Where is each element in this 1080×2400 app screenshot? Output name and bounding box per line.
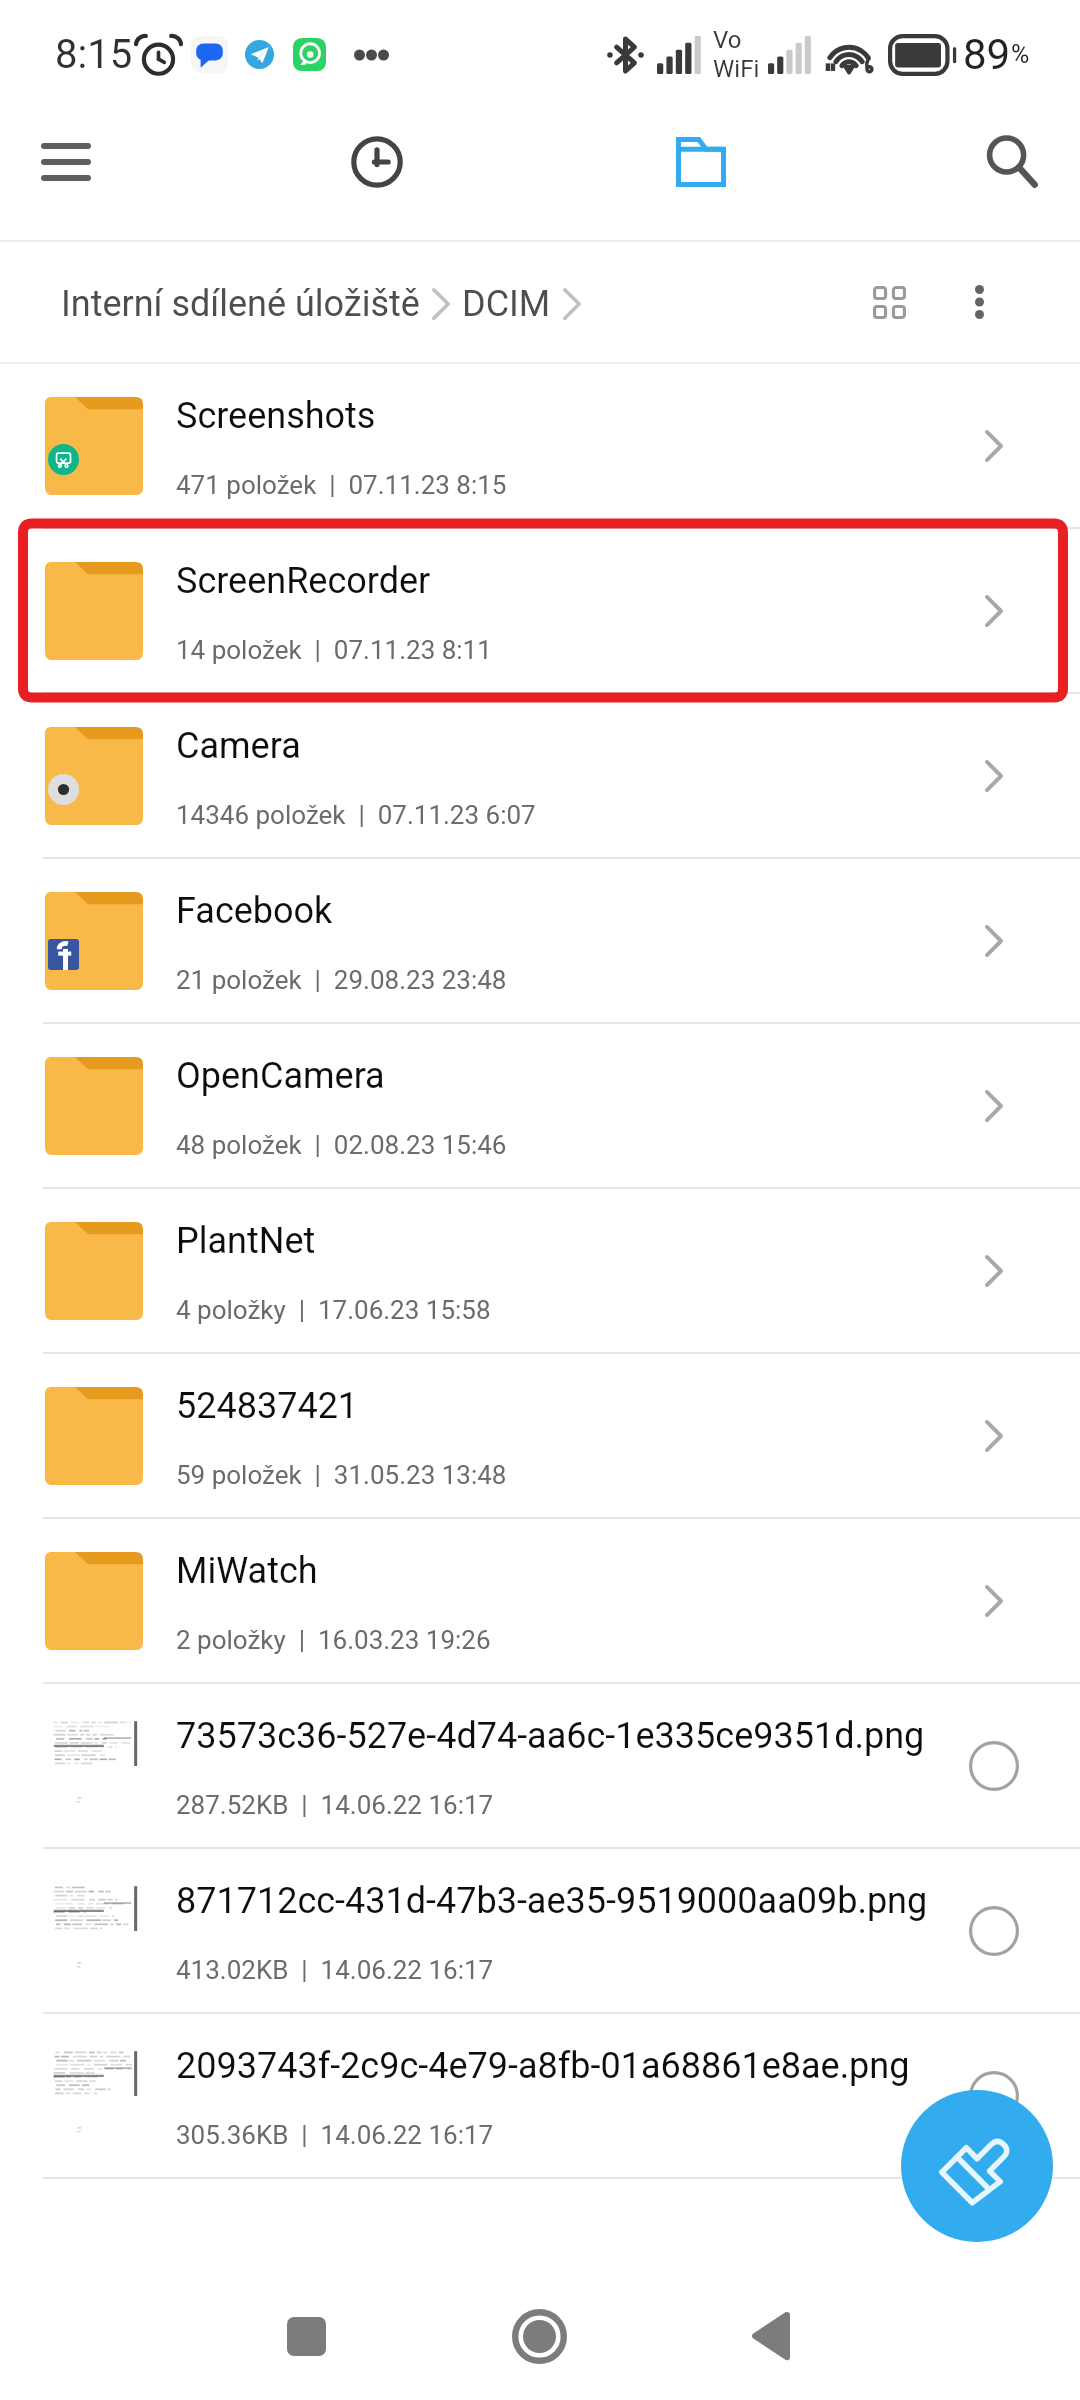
button[interactable]: Grid view: [843, 256, 935, 348]
button[interactable]: Browse files: [641, 102, 761, 222]
button[interactable]: Menu: [6, 102, 126, 222]
button[interactable]: 524837421: [0, 1354, 1080, 1517]
button[interactable]: Home: [484, 2281, 594, 2391]
staticText: 287.52KB | 14.06.22 16:17: [176, 1790, 494, 1820]
button[interactable]: MiWatch: [0, 1519, 1080, 1682]
staticText: 305.36KB | 14.06.22 16:17: [176, 2120, 494, 2150]
staticText: Interní sdílené úložiště: [61, 283, 420, 325]
button[interactable]: Clean up storage: [901, 2090, 1053, 2242]
button[interactable]: Recents: [251, 2281, 361, 2391]
staticText: OpenCamera: [176, 1055, 385, 1097]
staticText: %: [1011, 40, 1030, 69]
staticText: PlantNet: [176, 1220, 316, 1262]
button[interactable]: Search: [952, 102, 1072, 222]
button[interactable]: 73573c36-527e-4d74-aa6c-1e335ce9351d.png: [0, 1684, 1080, 1847]
staticText: 59 položek | 31.05.23 13:48: [176, 1460, 507, 1490]
staticText: 21 položek | 29.08.23 23:48: [176, 965, 507, 995]
staticText: 14346 položek | 07.11.23 6:07: [176, 800, 536, 830]
button[interactable]: More options: [933, 256, 1025, 348]
button[interactable]: Back: [716, 2281, 826, 2391]
button[interactable]: 2093743f-2c9c-4e79-a8fb-01a68861e8ae.png: [0, 2014, 1080, 2177]
button[interactable]: Interní sdílené úložiště: [61, 283, 420, 325]
staticText: 8:15: [55, 31, 133, 78]
staticText: 2 položky | 16.03.23 19:26: [176, 1625, 491, 1655]
button[interactable]: Recent files: [317, 102, 437, 222]
staticText: Camera: [176, 725, 301, 767]
staticText: Facebook: [176, 890, 333, 932]
staticText: DCIM: [462, 283, 551, 325]
staticText: 471 položek | 07.11.23 8:15: [176, 470, 507, 500]
staticText: 4 položky | 17.06.23 15:58: [176, 1295, 491, 1325]
button[interactable]: PlantNet: [0, 1189, 1080, 1352]
staticText: 89: [963, 30, 1011, 79]
staticText: MiWatch: [176, 1550, 318, 1592]
button[interactable]: Facebook: [0, 859, 1080, 1022]
staticText: 524837421: [176, 1385, 359, 1427]
staticText: Vo: [713, 26, 742, 54]
button[interactable]: DCIM: [462, 283, 551, 325]
button[interactable]: ScreenRecorder: [0, 529, 1080, 692]
button[interactable]: Camera: [0, 694, 1080, 857]
staticText: 413.02KB | 14.06.22 16:17: [176, 1955, 494, 1985]
staticText: WiFi: [713, 55, 760, 83]
staticText: 2093743f-2c9c-4e79-a8fb-01a68861e8ae.png: [176, 2045, 910, 2087]
button[interactable]: OpenCamera: [0, 1024, 1080, 1187]
staticText: 73573c36-527e-4d74-aa6c-1e335ce9351d.png: [176, 1715, 925, 1757]
button[interactable]: Screenshots: [0, 364, 1080, 527]
staticText: 48 položek | 02.08.23 15:46: [176, 1130, 507, 1160]
button[interactable]: 871712cc-431d-47b3-ae35-9519000aa09b.png: [0, 1849, 1080, 2012]
staticText: 871712cc-431d-47b3-ae35-9519000aa09b.png: [176, 1880, 928, 1922]
staticText: ScreenRecorder: [176, 560, 431, 602]
staticText: Screenshots: [176, 395, 376, 437]
staticText: 14 položek | 07.11.23 8:11: [176, 635, 492, 665]
